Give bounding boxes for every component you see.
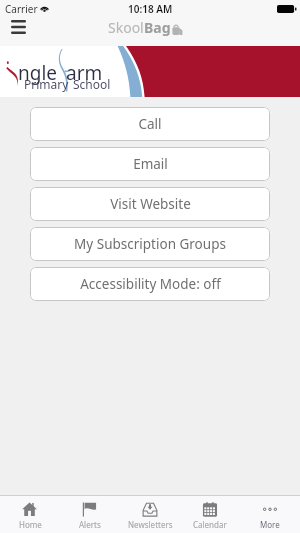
staticText: My Subscription Groups	[74, 235, 226, 253]
staticText: Visit Website	[110, 195, 191, 213]
staticText: School	[73, 76, 111, 92]
staticText: Bag	[144, 18, 171, 37]
button[interactable]: Newsletters	[120, 496, 180, 533]
staticText: 10:18 AM	[128, 2, 173, 16]
staticText: Primary	[24, 76, 69, 92]
staticText: Home	[19, 519, 42, 530]
button[interactable]: My Subscription Groups	[30, 227, 270, 261]
button[interactable]: More	[240, 496, 300, 533]
staticText: Skool	[108, 18, 144, 37]
button[interactable]: Home	[0, 496, 60, 533]
staticText: More	[260, 519, 280, 530]
button[interactable]: Calendar	[180, 496, 240, 533]
staticText: ngle	[18, 60, 58, 86]
staticText: arm	[66, 60, 103, 86]
button[interactable]: Call	[30, 107, 270, 141]
staticText: Newsletters	[128, 519, 173, 530]
staticText: Alerts	[79, 519, 101, 530]
staticText: Carrier	[5, 2, 38, 16]
staticText: Call	[138, 115, 162, 133]
staticText: Email	[133, 155, 168, 173]
staticText: Accessibility Mode: off	[80, 275, 221, 293]
button[interactable]: Email	[30, 147, 270, 181]
button[interactable]: Open navigation menu	[3, 14, 34, 40]
button[interactable]: Accessibility Mode: off	[30, 267, 270, 301]
button[interactable]: Visit Website	[30, 187, 270, 221]
staticText: Calendar	[193, 519, 227, 530]
button[interactable]: Alerts	[60, 496, 120, 533]
